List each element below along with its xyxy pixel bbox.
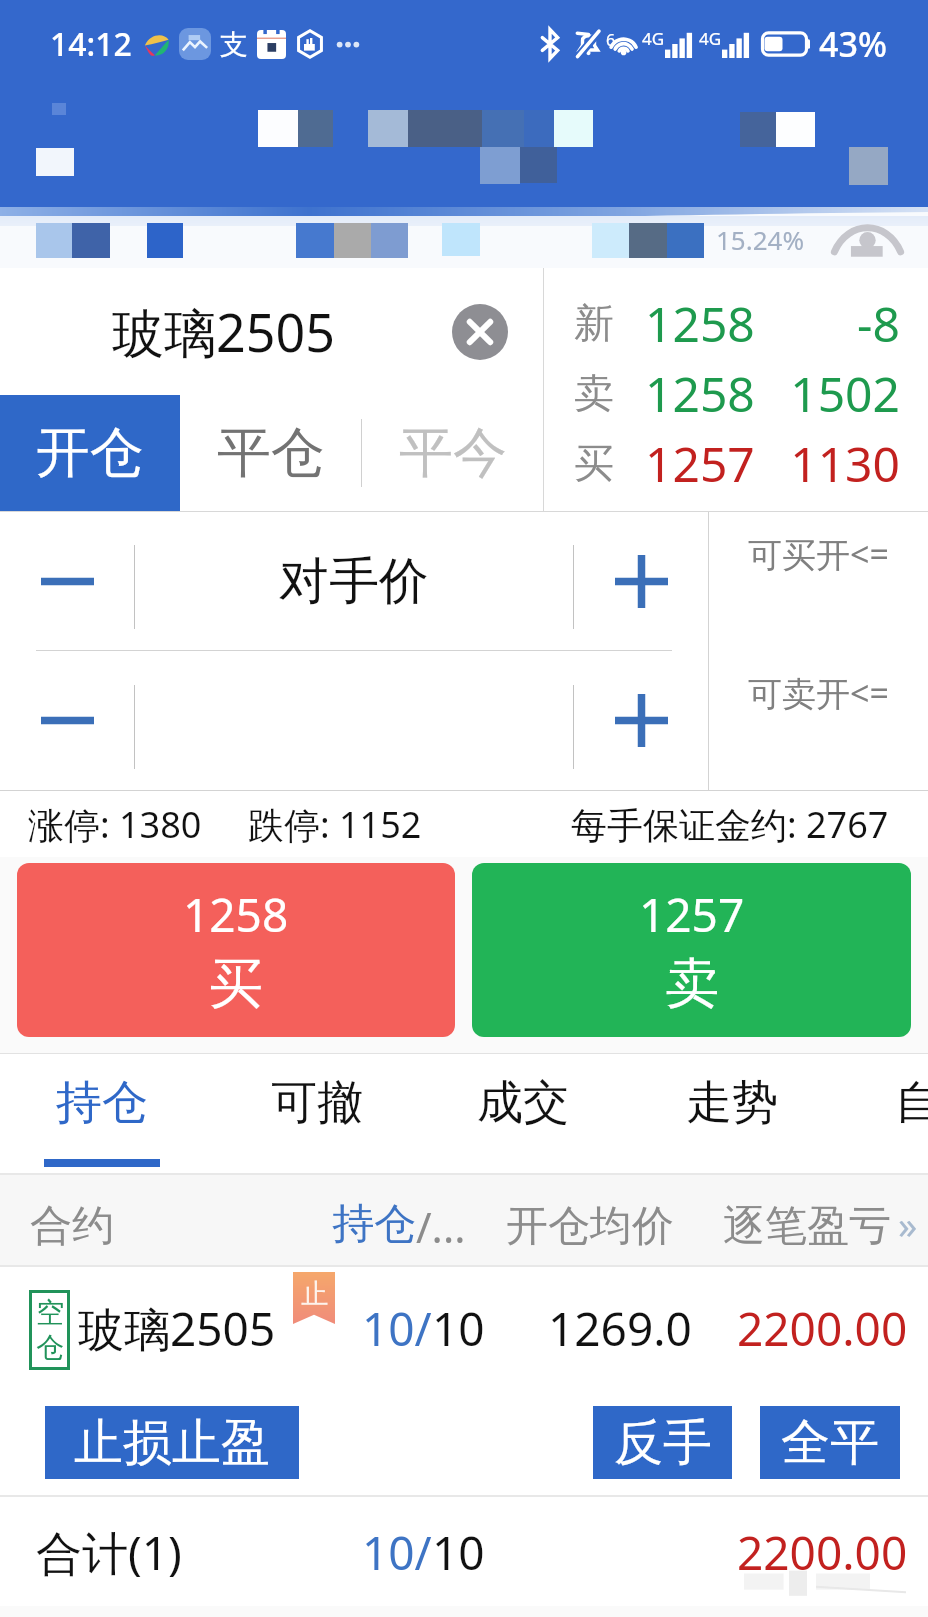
staticText: 1258	[645, 361, 755, 426]
staticText: 4G	[699, 27, 722, 50]
button[interactable]: 逐笔盈亏	[723, 1200, 891, 1253]
staticText: -8	[857, 291, 900, 356]
staticText: 玻璃2505	[112, 296, 335, 367]
staticText: 1502	[790, 361, 900, 426]
button[interactable]: 1257	[472, 863, 911, 1037]
staticText: 走势	[686, 1074, 778, 1132]
staticText: 新	[574, 298, 614, 348]
button[interactable]: 新	[544, 268, 928, 511]
staticText: 逐笔盈亏	[723, 1200, 891, 1253]
staticText: 开仓均价	[506, 1200, 674, 1253]
staticText: 支	[220, 27, 248, 62]
staticText: 全平	[781, 1412, 879, 1474]
staticText: 可撤	[271, 1074, 363, 1132]
staticText: 买	[574, 438, 614, 488]
button[interactable]: 清除	[452, 304, 508, 360]
staticText: 空	[36, 1295, 64, 1330]
button[interactable]: 开仓均价	[506, 1200, 674, 1253]
staticText: 6	[606, 29, 616, 51]
button[interactable]: 自	[838, 1053, 928, 1173]
button[interactable]: 账户头像	[833, 219, 902, 260]
staticText: 合约	[30, 1200, 114, 1253]
button[interactable]: 1258	[17, 863, 455, 1037]
button[interactable]: 全平	[760, 1406, 900, 1479]
staticText: »	[898, 1198, 918, 1250]
staticText: 43%	[819, 21, 887, 67]
button[interactable]: 可买开<=	[709, 512, 928, 651]
button[interactable]: 增加	[574, 512, 708, 650]
button[interactable]: 更多列	[898, 1198, 918, 1250]
button[interactable]: 可撤	[237, 1053, 397, 1173]
staticText: 卖	[574, 368, 614, 418]
button[interactable]: 平仓	[180, 395, 361, 511]
staticText: 可卖开<=	[748, 670, 889, 716]
staticText: 4G	[642, 27, 665, 50]
staticText: 反手	[614, 1412, 712, 1474]
staticText: 15.24%	[716, 222, 805, 257]
button[interactable]: 走势	[652, 1053, 812, 1173]
button[interactable]: 玻璃2505	[0, 268, 543, 395]
staticText: 可买开<=	[748, 531, 889, 577]
staticText: 玻璃2505	[78, 1297, 276, 1360]
staticText: 1258	[645, 291, 755, 356]
button[interactable]: 增加	[574, 651, 708, 790]
staticText: 14:12	[50, 22, 132, 66]
staticText: 1257	[639, 883, 745, 946]
button[interactable]: 减少	[0, 651, 134, 790]
button[interactable]: 成交	[443, 1053, 603, 1173]
staticText: 1257	[645, 431, 755, 496]
staticText: 10/	[362, 1297, 432, 1360]
staticText: 每手保证金约: 2767	[571, 800, 889, 849]
button[interactable]: 减少	[0, 512, 134, 650]
staticText: 跌停: 1152	[248, 800, 422, 849]
staticText: 卖	[665, 950, 719, 1018]
staticText: 2200.00	[737, 1521, 908, 1584]
button[interactable]: 持仓	[332, 1198, 466, 1255]
staticText: 仓	[36, 1330, 64, 1365]
staticText: 成交	[477, 1074, 569, 1132]
staticText: 2200.00	[737, 1297, 908, 1360]
staticText: 平今	[399, 419, 507, 487]
staticText: 10/	[362, 1521, 432, 1584]
staticText: 止损止盈	[74, 1412, 270, 1474]
button[interactable]: 对手价	[135, 512, 573, 650]
staticText: 合计(1)	[36, 1521, 182, 1584]
staticText: 自	[895, 1074, 928, 1132]
staticText: 对手价	[279, 550, 429, 613]
staticText: 1269.0	[548, 1297, 692, 1360]
button[interactable]: 止损止盈	[45, 1406, 299, 1479]
staticText: 买	[209, 950, 263, 1018]
button[interactable]: 合约	[30, 1200, 114, 1253]
staticText: 持仓	[332, 1198, 416, 1251]
staticText: 开仓	[36, 419, 144, 487]
staticText: 涨停: 1380	[28, 800, 202, 849]
staticText: 10	[432, 1297, 485, 1360]
staticText: 止	[301, 1277, 328, 1311]
button[interactable]: 平今	[362, 395, 543, 511]
staticText: /...	[416, 1198, 466, 1255]
staticText: 1130	[790, 431, 900, 496]
staticText: 10	[432, 1521, 485, 1584]
button[interactable]: 持仓	[22, 1053, 182, 1173]
button[interactable]: 开仓	[0, 395, 180, 511]
staticText: 持仓	[56, 1074, 148, 1132]
button[interactable]: 反手	[593, 1406, 732, 1479]
button[interactable]: 空	[0, 1267, 928, 1389]
button[interactable]: 可卖开<=	[709, 651, 928, 790]
staticText: 平仓	[217, 419, 325, 487]
staticText: 1258	[183, 883, 289, 946]
